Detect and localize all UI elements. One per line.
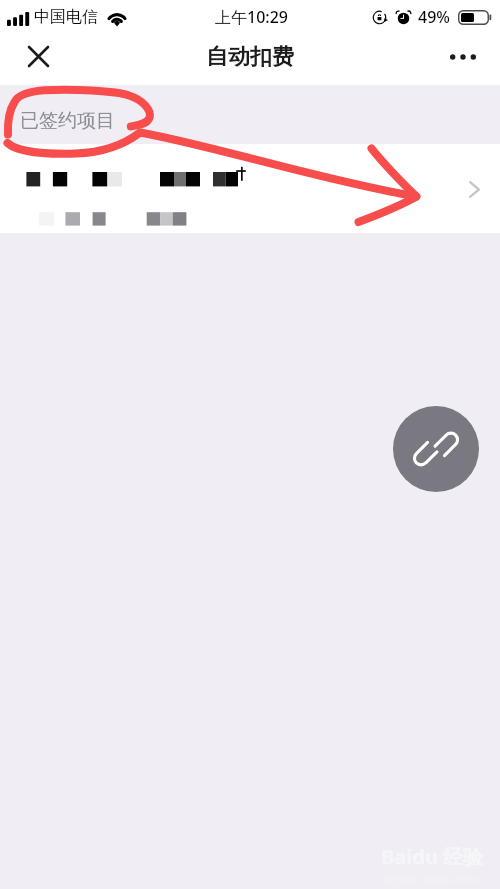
staticText: 已签约项目 bbox=[20, 109, 115, 133]
staticText: 49% bbox=[418, 6, 450, 28]
button[interactable]: Close bbox=[17, 35, 60, 78]
button[interactable]: More options bbox=[441, 35, 484, 78]
button[interactable] bbox=[0, 144, 500, 233]
staticText: 自动扣费 bbox=[206, 43, 294, 71]
button[interactable]: Copy link bbox=[393, 406, 479, 492]
staticText: 上午10:29 bbox=[215, 6, 288, 28]
staticText: Baidu 经验 bbox=[381, 843, 484, 870]
staticText: 中国电信 bbox=[34, 7, 98, 27]
